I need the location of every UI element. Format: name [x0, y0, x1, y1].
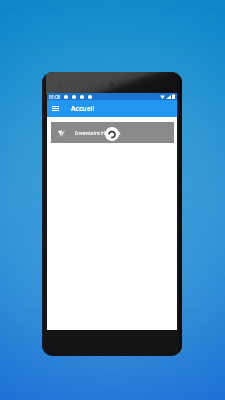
- button[interactable]: Open navigation menu: [50, 103, 61, 114]
- staticText: Inventaire Horizon: [75, 129, 121, 136]
- staticText: Accueil: [71, 104, 95, 113]
- button[interactable]: Inventaire Horizon: [51, 122, 174, 143]
- staticText: 01:00: [49, 94, 61, 100]
